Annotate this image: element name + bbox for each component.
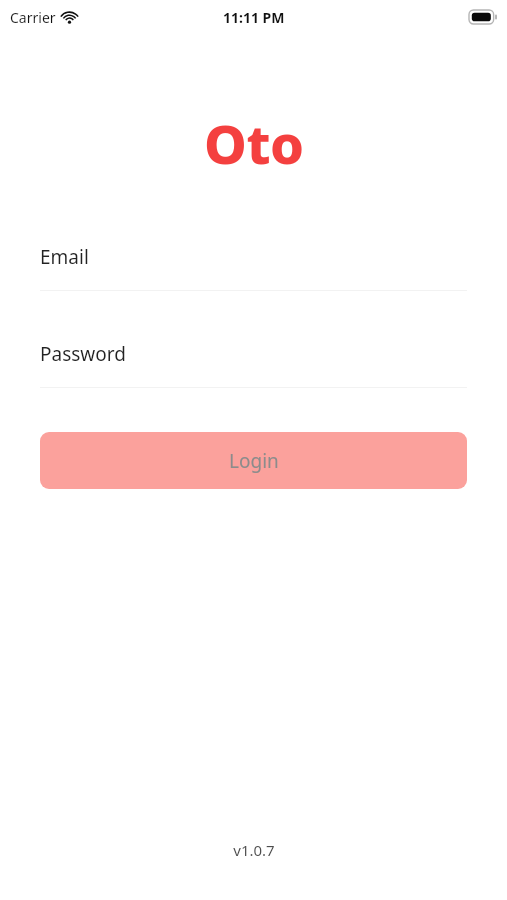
staticText: Carrier — [10, 8, 56, 27]
button[interactable]: Email — [40, 244, 467, 291]
staticText: Email — [40, 244, 89, 270]
staticText: Oto — [204, 106, 304, 180]
staticText: v1.0.7 — [233, 840, 275, 860]
staticText: Login — [229, 448, 279, 474]
button[interactable]: Login — [40, 432, 467, 489]
staticText: Password — [40, 341, 126, 367]
staticText: 11:11 PM — [223, 8, 285, 27]
button[interactable]: Password — [40, 341, 467, 388]
